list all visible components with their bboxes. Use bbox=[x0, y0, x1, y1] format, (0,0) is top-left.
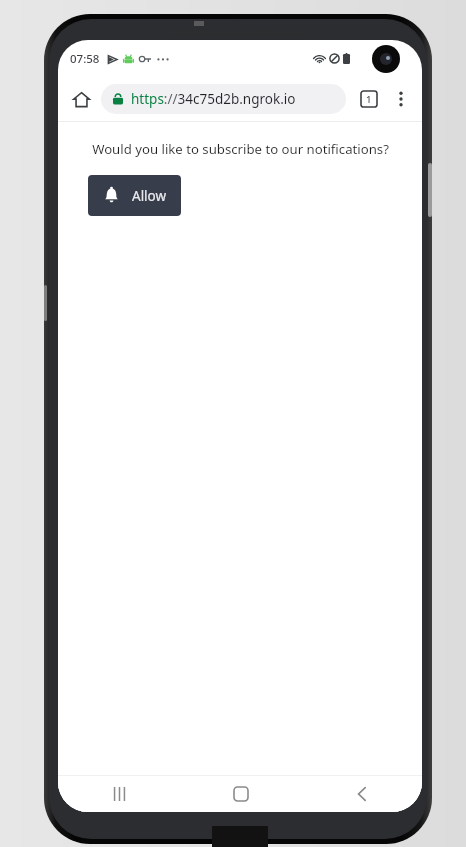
staticText: https://34c75d2b.ngrok.io bbox=[131, 90, 296, 108]
staticText: Allow bbox=[132, 187, 167, 205]
button[interactable]: Home bbox=[180, 776, 301, 812]
button[interactable]: Recent apps bbox=[58, 776, 180, 812]
button[interactable]: Tabs, 1 open bbox=[354, 84, 384, 114]
button[interactable]: Back bbox=[301, 776, 422, 812]
button[interactable]: More options bbox=[386, 84, 416, 114]
button[interactable]: https://34c75d2b.ngrok.io bbox=[101, 84, 346, 114]
staticText: 1 bbox=[366, 93, 372, 106]
button[interactable]: Home bbox=[64, 82, 98, 116]
button[interactable]: Allow bbox=[88, 175, 181, 216]
staticText: 07:58 bbox=[70, 51, 100, 67]
staticText: Would you like to subscribe to our notif… bbox=[92, 140, 389, 158]
